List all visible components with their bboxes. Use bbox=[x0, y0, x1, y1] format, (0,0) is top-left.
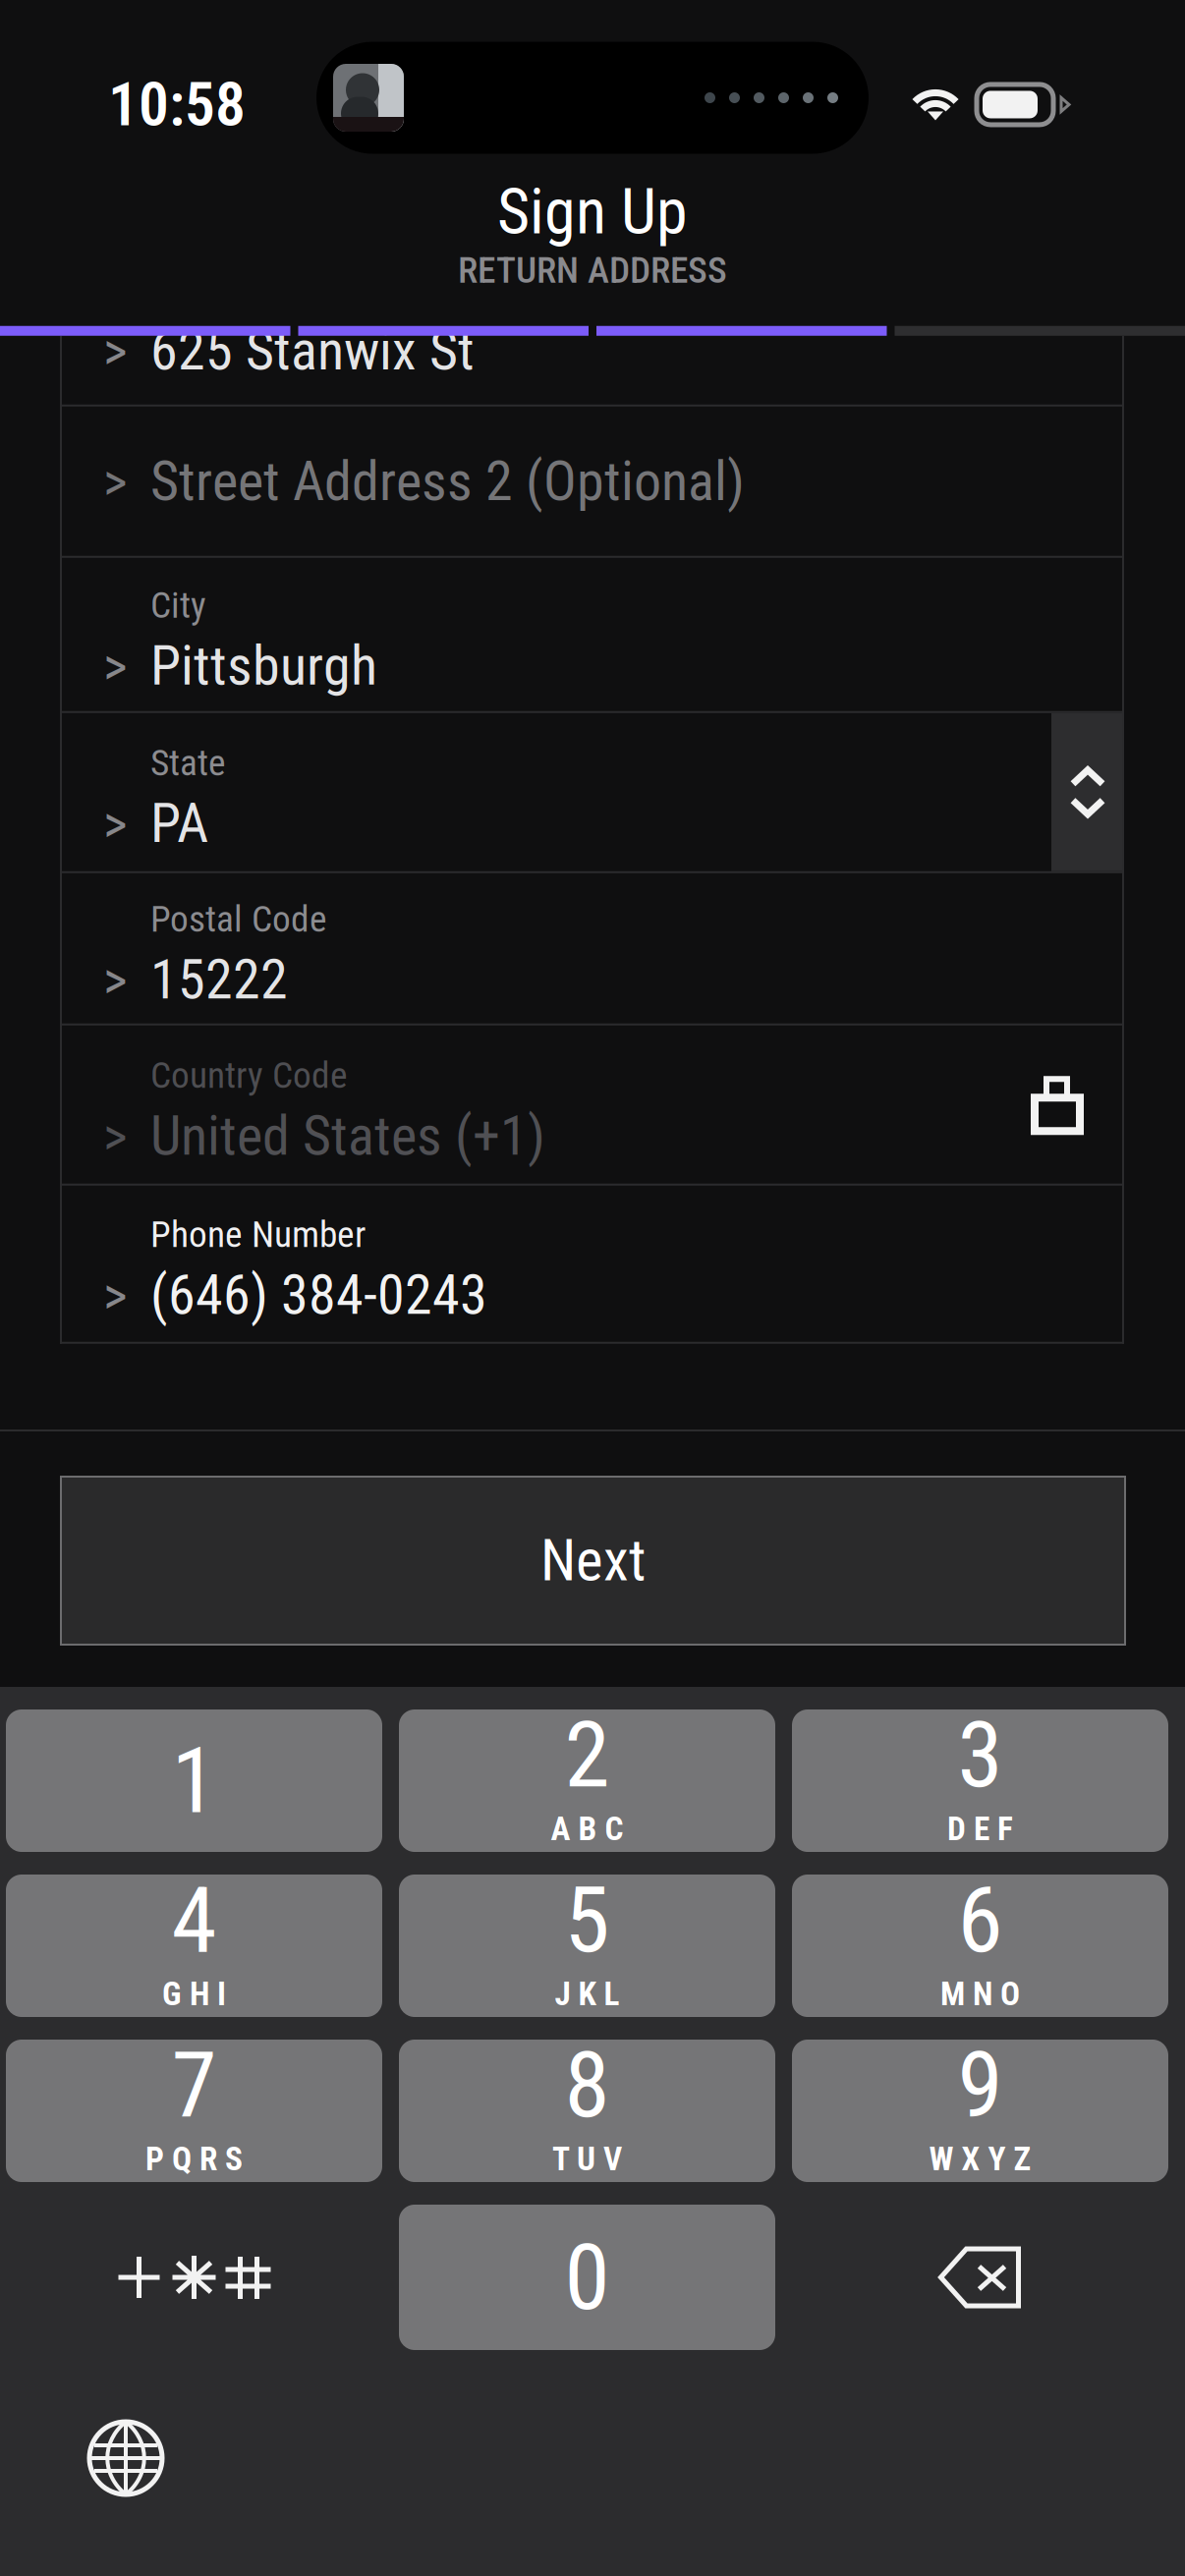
staticText: Street Address 2 (Optional) bbox=[150, 449, 745, 513]
staticText: > bbox=[103, 794, 128, 855]
staticText: 625 Stanwix St bbox=[150, 318, 475, 383]
button[interactable]: > bbox=[60, 336, 1124, 404]
staticText: Sign Up bbox=[497, 175, 688, 249]
staticText: RETURN ADDRESS bbox=[458, 249, 727, 291]
staticText: 4 bbox=[171, 1866, 217, 1974]
staticText: Pittsburgh bbox=[150, 633, 377, 698]
staticText: City bbox=[150, 584, 206, 627]
staticText: D E F bbox=[947, 1810, 1013, 1848]
button[interactable]: 7 bbox=[6, 2040, 382, 2182]
button[interactable]: 1 bbox=[6, 1709, 382, 1852]
staticText: 2 bbox=[564, 1701, 610, 1809]
button[interactable]: State bbox=[60, 713, 1124, 871]
button[interactable]: Next bbox=[61, 1477, 1125, 1645]
button[interactable]: 3 bbox=[792, 1709, 1168, 1852]
button[interactable]: Phone Number bbox=[60, 1186, 1124, 1342]
staticText: > bbox=[103, 950, 128, 1011]
staticText: 9 bbox=[958, 2032, 1003, 2139]
staticText: 7 bbox=[171, 2032, 217, 2139]
button[interactable]: 2 bbox=[399, 1709, 775, 1852]
staticText: W X Y Z bbox=[929, 2140, 1031, 2178]
staticText: 10:58 bbox=[108, 69, 246, 140]
button[interactable]: 0 bbox=[399, 2205, 775, 2350]
button[interactable]: > bbox=[60, 406, 1124, 556]
staticText: 1 bbox=[171, 1727, 217, 1834]
staticText: 15222 bbox=[150, 947, 288, 1012]
staticText: State bbox=[150, 741, 226, 784]
staticText: 0 bbox=[564, 2224, 610, 2331]
staticText: (646) 384-0243 bbox=[150, 1263, 487, 1327]
staticText: 8 bbox=[564, 2032, 610, 2139]
staticText: > bbox=[103, 1106, 128, 1167]
staticText: United States (+1) bbox=[150, 1104, 545, 1168]
button[interactable]: Country Code bbox=[60, 1025, 1124, 1184]
button[interactable]: City bbox=[60, 558, 1124, 711]
staticText: > bbox=[103, 636, 128, 697]
staticText: > bbox=[103, 321, 128, 382]
staticText: Phone Number bbox=[150, 1213, 366, 1256]
staticText: Country Code bbox=[150, 1054, 348, 1097]
button[interactable]: 4 bbox=[6, 1875, 382, 2017]
staticText: G H I bbox=[162, 1975, 226, 2013]
staticText: 3 bbox=[958, 1701, 1003, 1809]
button[interactable]: 6 bbox=[792, 1875, 1168, 2017]
staticText: A B C bbox=[551, 1810, 623, 1848]
staticText: P Q R S bbox=[145, 2140, 243, 2178]
staticText: J K L bbox=[555, 1975, 620, 2013]
button[interactable]: 8 bbox=[399, 2040, 775, 2182]
staticText: > bbox=[103, 1265, 128, 1327]
button[interactable]: Postal Code bbox=[60, 873, 1124, 1023]
button[interactable]: Symbols bbox=[6, 2205, 382, 2350]
staticText: M N O bbox=[940, 1975, 1020, 2013]
staticText: > bbox=[103, 451, 128, 513]
staticText: PA bbox=[150, 791, 208, 856]
button[interactable]: Next keyboard bbox=[71, 2413, 181, 2503]
staticText: 6 bbox=[958, 1866, 1003, 1974]
button[interactable]: 5 bbox=[399, 1875, 775, 2017]
staticText: Postal Code bbox=[150, 898, 327, 941]
staticText: T U V bbox=[552, 2140, 622, 2178]
button[interactable]: Delete bbox=[792, 2205, 1168, 2350]
staticText: Next bbox=[540, 1527, 646, 1594]
button[interactable]: 9 bbox=[792, 2040, 1168, 2182]
staticText: 5 bbox=[564, 1866, 610, 1974]
